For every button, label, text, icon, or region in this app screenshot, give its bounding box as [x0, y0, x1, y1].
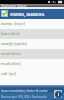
- staticText: [finn]: [11, 31, 20, 36]
- staticText: exactly: [1, 41, 13, 46]
- staticText: much: [1, 51, 11, 56]
- staticText: Flashcards Deluxe: [1, 4, 27, 7]
- staticText: Brainscape 500,000+ flashcards: [1, 95, 47, 99]
- staticText: much: [1, 61, 11, 66]
- staticText: learn: [1, 31, 10, 36]
- staticText: SYMBOL, SAMMOHL: [10, 12, 45, 17]
- button[interactable]: Flashcards Deluxe: [0, 4, 64, 7]
- button[interactable]: sult: [0, 69, 64, 79]
- button[interactable]: Select all: [1, 10, 8, 17]
- staticText: Learn vocabulary faster & easier: [1, 89, 48, 93]
- staticText: sult: [1, 71, 8, 76]
- staticText: otama: [1, 21, 13, 26]
- other: Ad information: [54, 90, 62, 98]
- button[interactable]: otama: [0, 19, 64, 29]
- button[interactable]: learn: [0, 29, 64, 39]
- button[interactable]: much: [0, 59, 64, 69]
- staticText: [finn]: [12, 61, 21, 66]
- staticText: [qiv]: [9, 71, 16, 76]
- button[interactable]: exactly: [0, 39, 64, 49]
- staticText: [sg/adv]: [14, 41, 27, 46]
- button[interactable]: Learn vocabulary faster & easier: [0, 85, 64, 100]
- staticText: [finn]: [12, 51, 21, 56]
- button[interactable]: much: [0, 49, 64, 59]
- staticText: [noun]: [14, 21, 25, 26]
